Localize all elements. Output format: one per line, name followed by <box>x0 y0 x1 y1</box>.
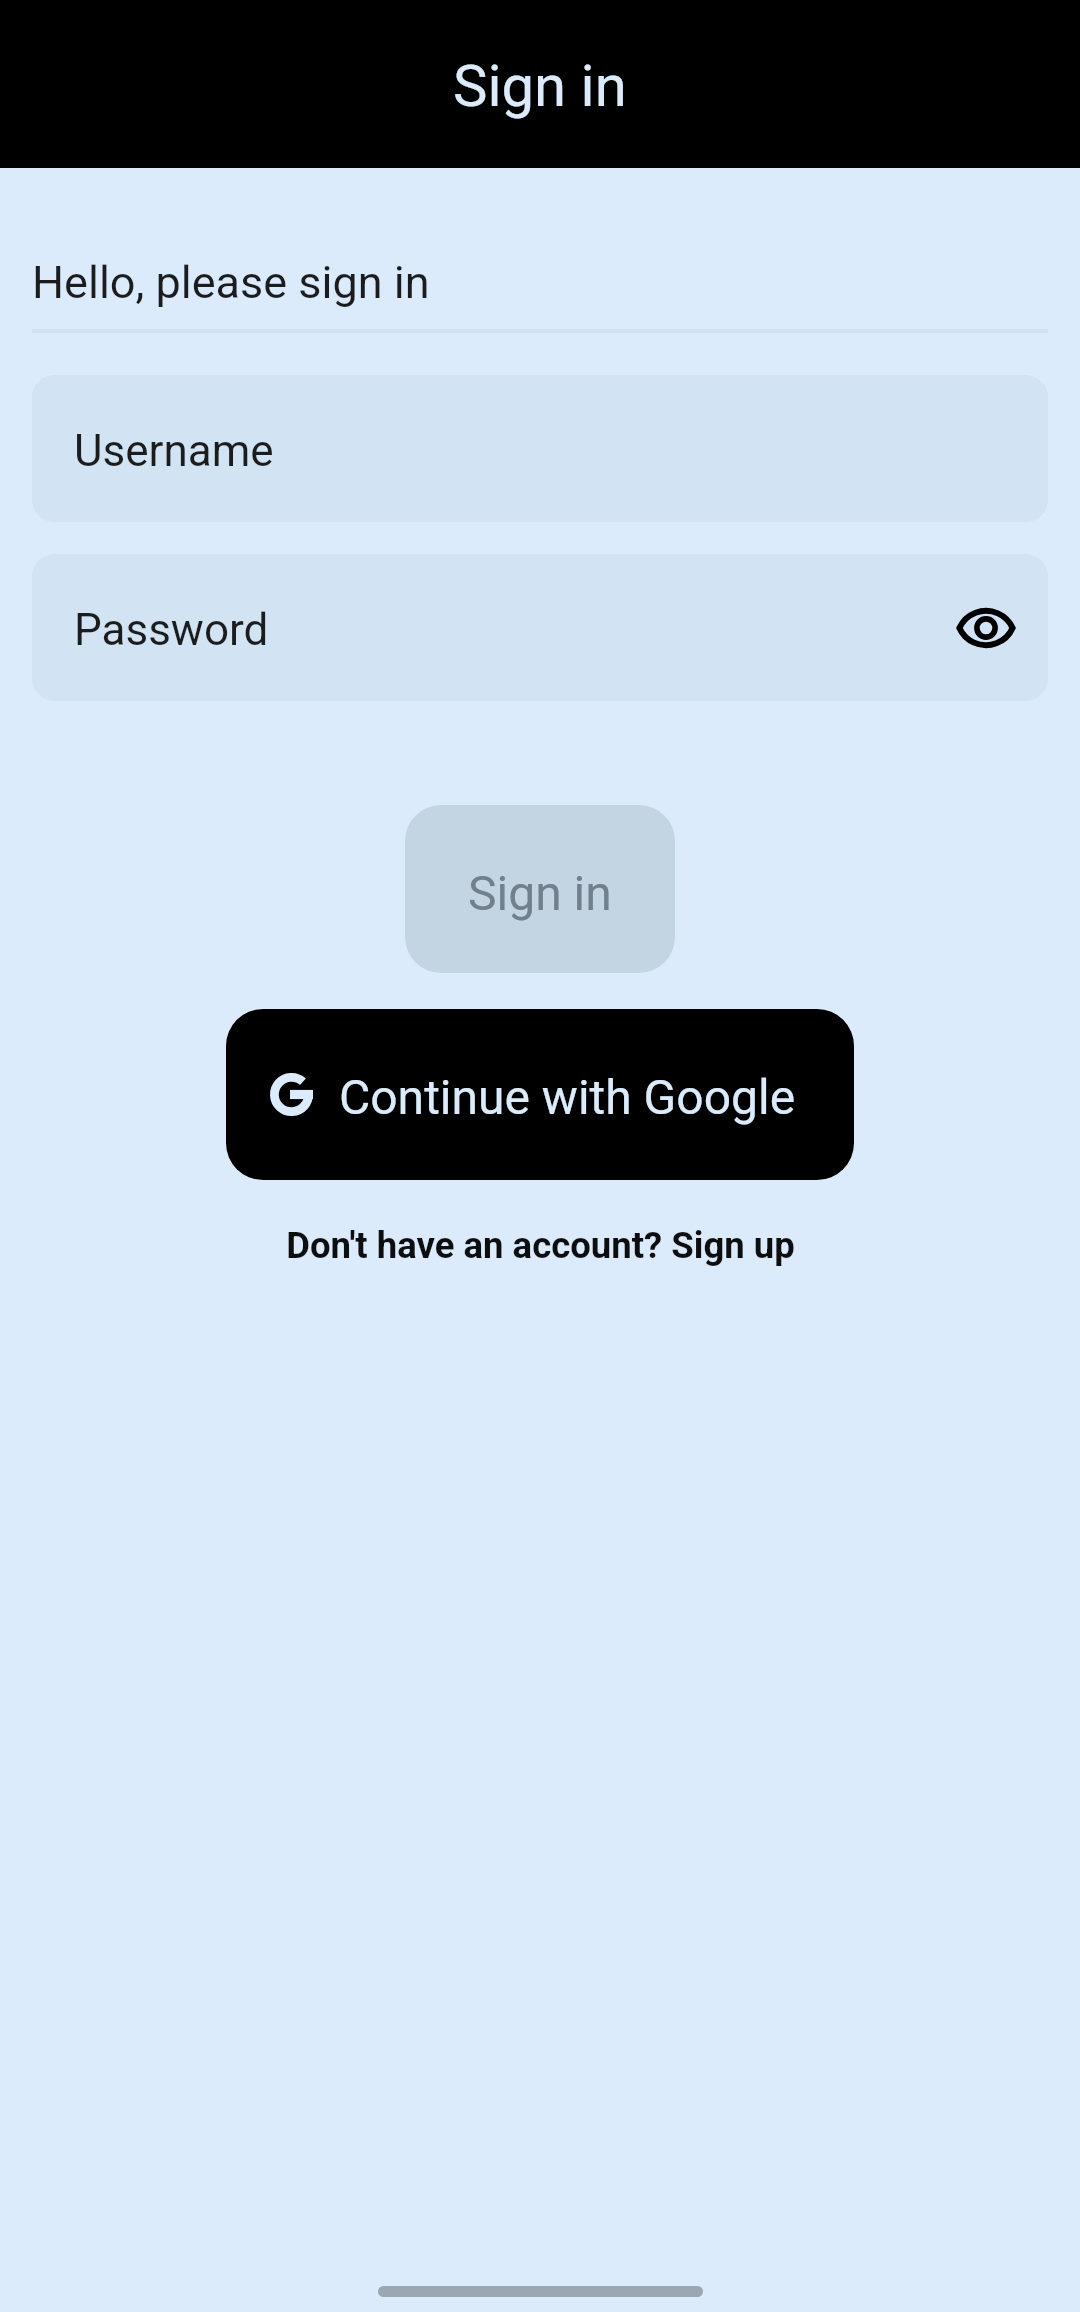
staticText: Sign in <box>468 865 612 921</box>
button[interactable]: Sign in <box>405 805 675 973</box>
staticText: Password <box>74 604 269 656</box>
button[interactable]: Continue with Google <box>226 1009 854 1180</box>
staticText: Username <box>74 425 274 477</box>
staticText: Don't have an account? Sign up <box>286 1224 795 1267</box>
staticText: Sign in <box>453 52 627 120</box>
button[interactable]: Don't have an account? Sign up <box>270 1204 811 1287</box>
button[interactable]: Show password <box>948 590 1024 666</box>
staticText: Continue with Google <box>339 1069 796 1125</box>
staticText: Hello, please sign in <box>32 256 430 309</box>
button[interactable]: Password <box>32 554 1048 701</box>
button[interactable]: Username <box>32 375 1048 522</box>
